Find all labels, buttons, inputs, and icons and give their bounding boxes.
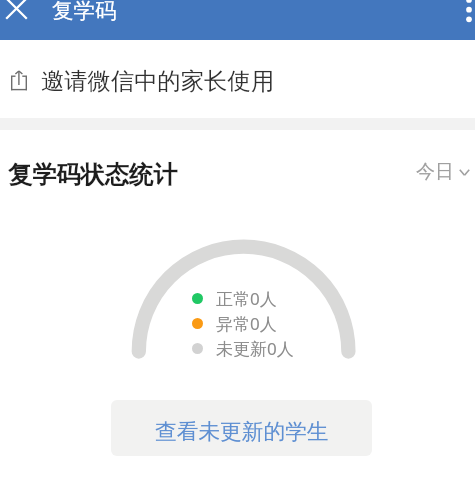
button[interactable]: 邀请微信中的家长使用 — [0, 40, 475, 118]
staticText: 正常0人 — [216, 287, 277, 310]
staticText: 邀请微信中的家长使用 — [41, 67, 274, 96]
staticText: 复学码状态统计 — [8, 160, 178, 190]
button[interactable]: Close — [0, 0, 32, 24]
button[interactable]: 今日 — [416, 160, 470, 184]
staticText: 复学码 — [52, 0, 117, 24]
staticText: 未更新0人 — [216, 337, 294, 360]
button[interactable]: More options — [454, 0, 475, 25]
staticText: 今日 — [416, 160, 454, 184]
button[interactable]: 查看未更新的学生 — [111, 400, 372, 456]
staticText: 查看未更新的学生 — [155, 418, 329, 445]
staticText: 异常0人 — [216, 312, 277, 335]
